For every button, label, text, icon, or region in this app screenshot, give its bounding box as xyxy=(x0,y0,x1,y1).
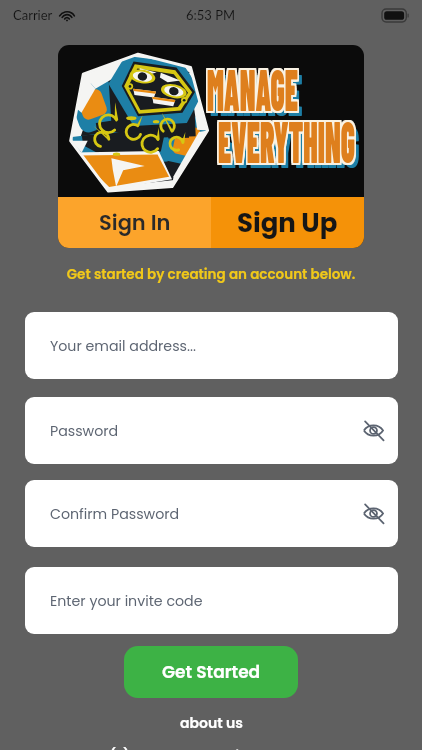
button[interactable]: Get Started xyxy=(124,646,298,698)
staticText: Sign In xyxy=(99,208,171,237)
staticText: MANAGE xyxy=(205,51,296,120)
other: Show password xyxy=(363,504,384,523)
staticText: MANAGE xyxy=(209,51,300,120)
staticText: Carrier xyxy=(13,7,53,23)
staticText: EVERYTHING xyxy=(220,107,357,176)
button[interactable]: Sign In xyxy=(58,197,211,248)
staticText: EVERYTHING xyxy=(220,103,357,172)
staticText: Confirm Password xyxy=(50,504,363,524)
staticText: Enter your invite code xyxy=(50,591,384,611)
staticText: EVERYTHING xyxy=(221,110,358,179)
staticText: MANAGE xyxy=(209,55,300,124)
staticText: EVERYTHING xyxy=(218,105,355,174)
staticText: 6:53 PM xyxy=(186,7,236,23)
staticText: MANAGE xyxy=(209,53,300,122)
staticText: Get started by creating an account below… xyxy=(0,265,422,284)
button[interactable]: Your email address... xyxy=(25,312,398,379)
staticText: (c) Manage Everything LLC 2022 xyxy=(0,746,422,750)
staticText: EVERYTHING xyxy=(218,107,355,176)
staticText: MANAGE xyxy=(205,53,296,122)
staticText: EVERYTHING xyxy=(216,105,353,174)
other: Show password xyxy=(363,421,384,440)
staticText: EVERYTHING xyxy=(216,107,353,176)
staticText: MANAGE xyxy=(207,53,298,122)
staticText: MANAGE xyxy=(205,55,296,124)
staticText: EVERYTHING xyxy=(218,105,355,174)
staticText: EVERYTHING xyxy=(223,110,360,179)
staticText: MANAGE xyxy=(212,58,303,127)
staticText: EVERYTHING xyxy=(218,103,355,172)
staticText: MANAGE xyxy=(207,55,298,124)
staticText: Password xyxy=(50,421,363,441)
staticText: MANAGE xyxy=(210,58,301,127)
staticText: Get Started xyxy=(162,660,261,684)
staticText: Your email address... xyxy=(50,336,384,356)
button[interactable]: Confirm Password xyxy=(25,480,398,547)
staticText: about us xyxy=(180,713,243,733)
button[interactable]: Password xyxy=(25,397,398,464)
staticText: EVERYTHING xyxy=(220,105,357,174)
staticText: MANAGE xyxy=(207,53,298,122)
staticText: EVERYTHING xyxy=(216,103,353,172)
button[interactable]: Enter your invite code xyxy=(25,567,398,634)
button[interactable]: Sign Up xyxy=(211,197,364,248)
button[interactable]: about us xyxy=(170,711,253,735)
staticText: Sign Up xyxy=(237,205,338,241)
staticText: MANAGE xyxy=(207,51,298,120)
